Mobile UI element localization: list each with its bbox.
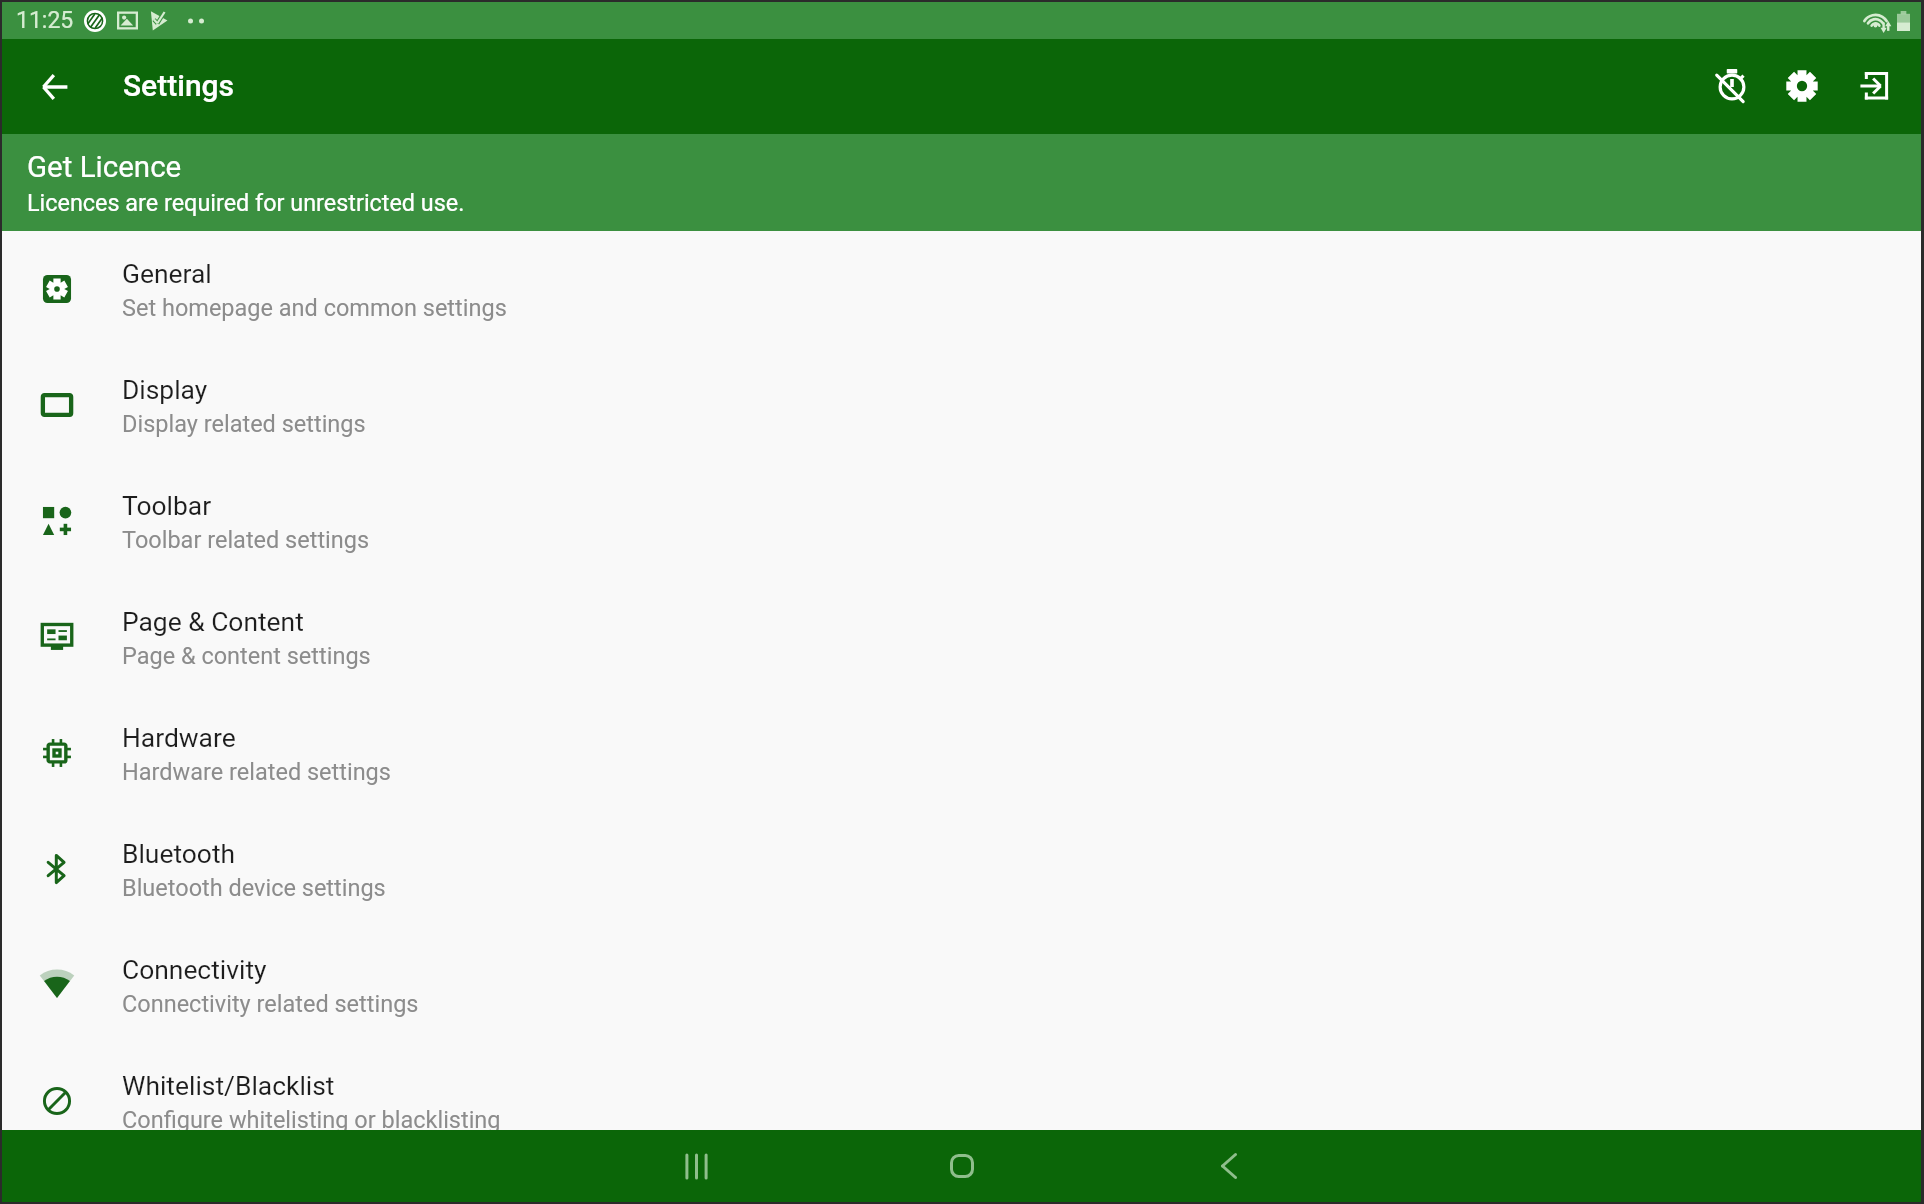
button[interactable]: Display [2, 347, 1921, 463]
staticText: Settings [123, 68, 235, 103]
staticText: Display [122, 375, 208, 406]
staticText: Toolbar [122, 491, 212, 522]
staticText: Connectivity related settings [122, 990, 419, 1018]
staticText: Hardware related settings [122, 758, 391, 786]
staticText: General [122, 259, 212, 290]
staticText: Toolbar related settings [122, 526, 370, 554]
button[interactable]: Recent apps [660, 1131, 730, 1201]
button[interactable]: Back [1194, 1131, 1264, 1201]
staticText: Bluetooth device settings [122, 874, 386, 902]
button[interactable]: General [2, 231, 1921, 347]
staticText: Hardware [122, 723, 236, 754]
staticText: Whitelist/Blacklist [122, 1071, 335, 1102]
button[interactable]: Settings [1765, 50, 1838, 123]
staticText: Licences are required for unrestricted u… [27, 189, 465, 216]
staticText: Page & content settings [122, 642, 371, 670]
staticText: Display related settings [122, 410, 366, 438]
staticText: Page & Content [122, 607, 304, 638]
staticText: Get Licence [27, 150, 182, 185]
button[interactable]: Whitelist/Blacklist [2, 1043, 1921, 1130]
button[interactable]: Hardware [2, 695, 1921, 811]
button[interactable]: Exit app [1838, 50, 1911, 123]
button[interactable]: Connectivity [2, 927, 1921, 1043]
button[interactable]: Toolbar [2, 463, 1921, 579]
button[interactable]: Bluetooth [2, 811, 1921, 927]
staticText: 11:25 [16, 7, 74, 34]
staticText: Connectivity [122, 955, 267, 986]
button[interactable]: Stop timer [1692, 50, 1765, 123]
staticText: Set homepage and common settings [122, 294, 507, 322]
button[interactable]: Get Licence [2, 134, 1921, 231]
button[interactable]: Page & Content [2, 579, 1921, 695]
button[interactable]: Back [24, 56, 86, 118]
staticText: Bluetooth [122, 839, 236, 870]
button[interactable]: Home [927, 1131, 997, 1201]
staticText: Configure whitelisting or blacklisting [122, 1106, 501, 1130]
